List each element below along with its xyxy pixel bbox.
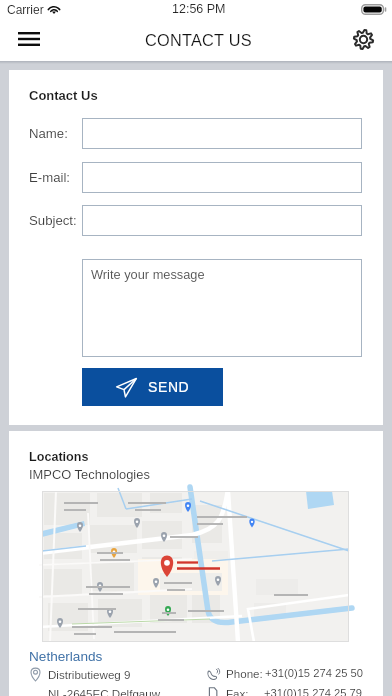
staticText: Carrier	[7, 3, 44, 16]
button[interactable]: Netherlands	[29, 649, 103, 664]
button[interactable]: Open navigation menu	[8, 23, 49, 55]
button[interactable]	[82, 118, 362, 149]
button[interactable]	[82, 205, 362, 236]
staticText: Subject:	[29, 213, 77, 228]
staticText: +31(0)15 274 25 50	[265, 667, 363, 680]
button[interactable]	[82, 162, 362, 193]
staticText: Locations	[29, 450, 89, 464]
staticText: E-mail:	[29, 170, 71, 185]
staticText: +31(0)15 274 25 79	[264, 687, 362, 696]
staticText: NL-2645EC Delfgauw	[48, 687, 161, 696]
staticText: Name:	[29, 126, 68, 141]
staticText: Fax:	[226, 687, 249, 696]
button[interactable]: Distributieweg 9	[29, 667, 131, 681]
staticText: CONTACT US	[145, 31, 252, 49]
staticText: Phone:	[226, 667, 263, 680]
button[interactable]: Settings	[345, 22, 381, 57]
button[interactable]: Write your message	[82, 259, 362, 357]
staticText: Write your message	[91, 267, 205, 281]
staticText: 12:56 PM	[172, 2, 226, 16]
button[interactable]: Phone:	[207, 667, 363, 680]
staticText: Contact Us	[29, 88, 98, 103]
staticText: IMPCO Technologies	[29, 467, 150, 481]
button[interactable]: SEND	[82, 368, 223, 406]
button[interactable]: Fax:	[207, 687, 362, 696]
staticText: Distributieweg 9	[48, 668, 131, 681]
staticText: SEND	[148, 379, 190, 395]
